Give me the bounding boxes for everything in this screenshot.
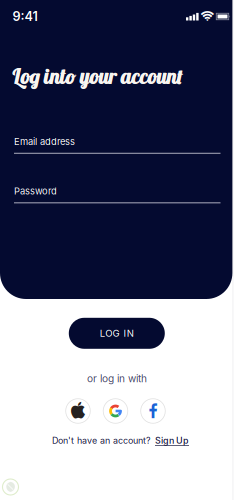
staticText: Sign Up	[155, 435, 189, 446]
button[interactable]: Email address	[14, 136, 221, 156]
button[interactable]: LOG IN	[69, 318, 165, 349]
staticText: Email address	[14, 136, 75, 147]
staticText: 	[71, 402, 85, 420]
staticText: 9:41	[12, 9, 37, 24]
staticText: Log into your account	[12, 63, 183, 89]
button[interactable]: Sign Up	[155, 435, 189, 446]
button[interactable]: 	[140, 398, 166, 424]
staticText: 	[200, 10, 214, 22]
staticText: LOG IN	[100, 327, 134, 339]
button[interactable]	[103, 398, 128, 424]
staticText: Log into your account	[11, 63, 182, 89]
staticText: Don't have an account?	[52, 435, 151, 446]
staticText: 	[148, 403, 157, 419]
staticText: or log in with	[87, 372, 147, 385]
staticText: Password	[14, 185, 57, 197]
button[interactable]: Password	[14, 185, 221, 205]
button[interactable]: 	[65, 398, 91, 424]
